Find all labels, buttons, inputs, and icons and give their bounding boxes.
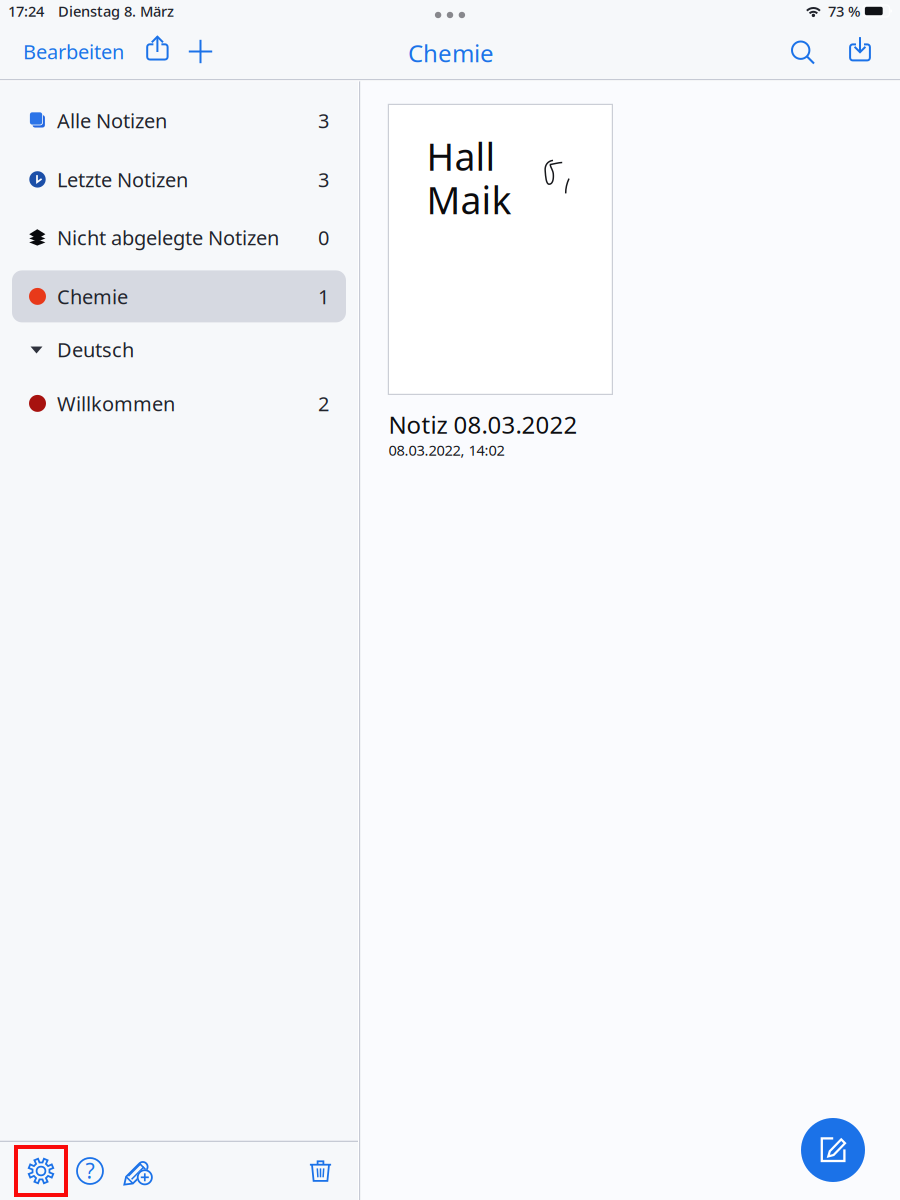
staticText: Willkommen xyxy=(57,390,175,417)
button[interactable]: Importieren xyxy=(849,37,871,69)
button[interactable]: Notiz hinzufügen xyxy=(123,1155,154,1186)
button[interactable]: Hilfe xyxy=(76,1157,104,1185)
button[interactable]: Hall xyxy=(388,104,612,460)
button[interactable]: Neuer Ordner xyxy=(188,36,213,69)
staticText: Letzte Notizen xyxy=(57,166,188,193)
button[interactable]: Willkommen xyxy=(12,377,346,429)
staticText: Chemie xyxy=(57,283,128,310)
staticText: 1 xyxy=(318,283,329,310)
button[interactable]: Einstellungen xyxy=(16,1147,66,1195)
staticText: Notiz 08.03.2022 xyxy=(388,408,577,440)
staticText: Bearbeiten xyxy=(23,38,124,65)
staticText: Alle Notizen xyxy=(57,107,167,134)
button[interactable]: Alle Notizen xyxy=(12,94,346,146)
staticText: 17:24 xyxy=(8,1,44,21)
button[interactable]: Deutsch xyxy=(12,323,346,375)
button[interactable]: Nicht abgelegte Notizen xyxy=(12,211,346,263)
staticText: Deutsch xyxy=(57,336,134,363)
staticText: 3 xyxy=(318,107,329,134)
staticText: 08.03.2022, 14:02 xyxy=(388,440,504,460)
staticText: Hall xyxy=(426,131,495,181)
staticText: Chemie xyxy=(408,37,494,69)
staticText: 3 xyxy=(318,166,329,193)
staticText: ? xyxy=(85,1156,94,1185)
staticText: 2 xyxy=(318,390,329,417)
staticText: Maik xyxy=(426,175,511,225)
staticText: 0 xyxy=(318,224,329,251)
staticText: Dienstag 8. März xyxy=(58,1,174,21)
staticText: Nicht abgelegte Notizen xyxy=(57,224,279,251)
button[interactable]: Letzte Notizen xyxy=(12,153,346,205)
button[interactable]: Löschen xyxy=(309,1159,332,1182)
button[interactable]: Chemie xyxy=(12,270,346,322)
button[interactable]: Neue Notiz xyxy=(801,1118,865,1182)
button[interactable]: Teilen xyxy=(146,36,169,69)
staticText: 73 % xyxy=(828,1,860,21)
button[interactable]: Suchen xyxy=(790,36,815,70)
button[interactable]: Bearbeiten xyxy=(23,30,124,76)
